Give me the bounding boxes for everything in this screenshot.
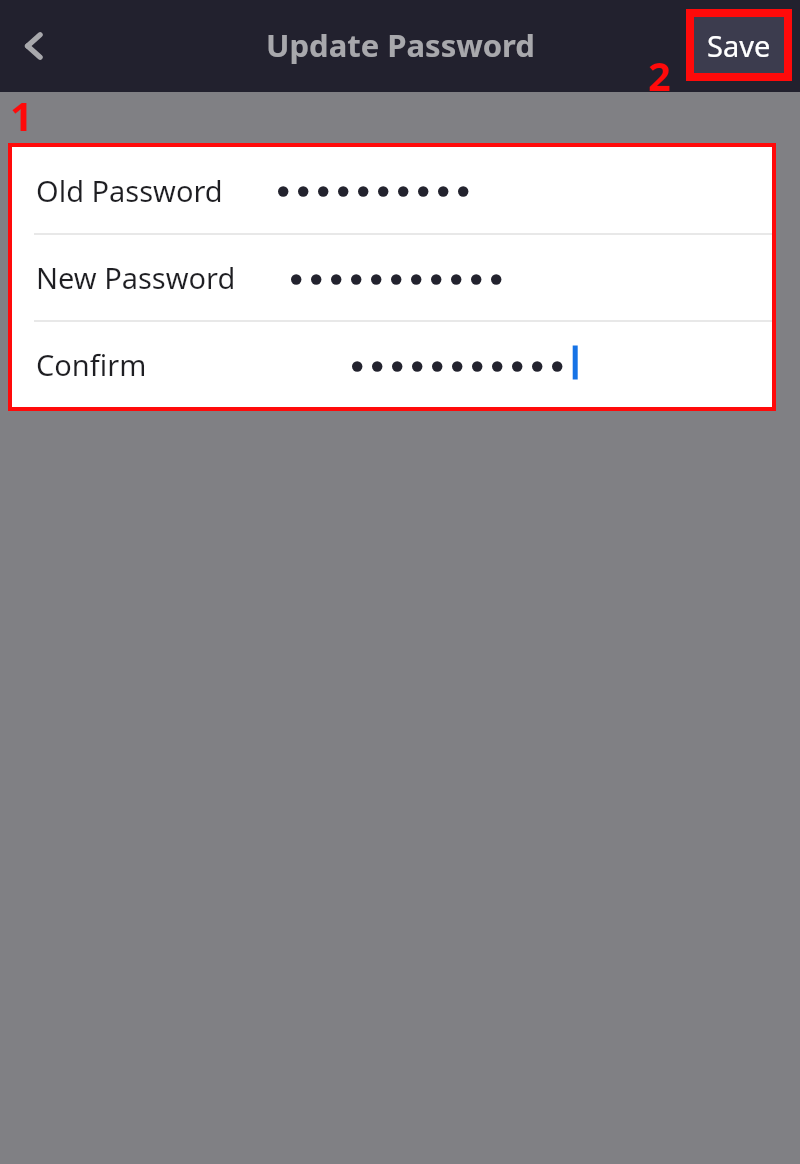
button[interactable]: Old Password — [12, 147, 772, 233]
staticText: Save — [707, 26, 771, 65]
button[interactable]: Save — [694, 17, 784, 73]
staticText: Update Password — [266, 24, 535, 66]
staticText: New Password — [36, 258, 236, 297]
button[interactable]: Back — [4, 16, 64, 76]
staticText: 1 — [10, 88, 33, 142]
staticText: Old Password — [36, 171, 223, 210]
staticText: Confirm — [36, 345, 147, 384]
button[interactable]: New Password — [12, 235, 772, 320]
button[interactable]: Confirm — [12, 322, 772, 407]
staticText: 2 — [648, 48, 671, 102]
